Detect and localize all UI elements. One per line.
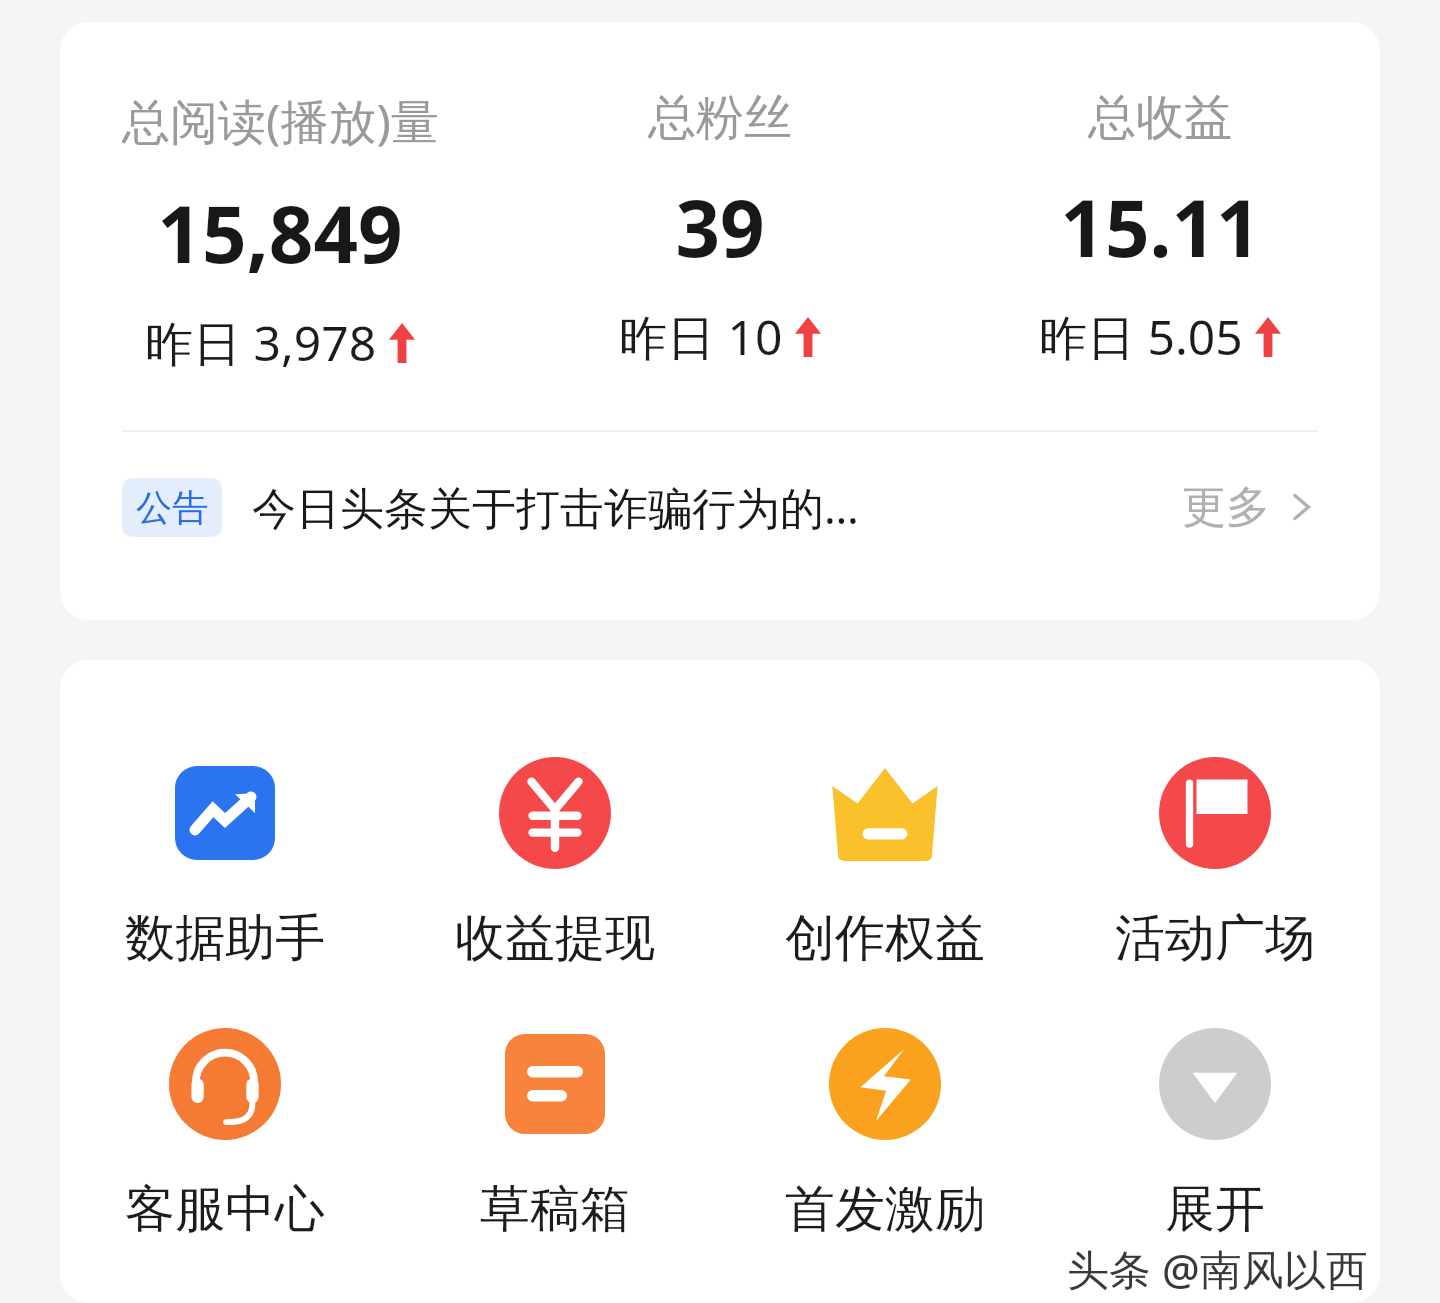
- button[interactable]: 收益提现: [390, 755, 720, 970]
- staticText: 15,849: [157, 180, 403, 286]
- other: 数据助手: [175, 766, 275, 860]
- staticText: 更多: [1182, 480, 1270, 535]
- staticText: 头条 @南风以西: [1067, 1240, 1368, 1297]
- button[interactable]: 数据助手: [60, 755, 390, 970]
- other: 活动广场: [1159, 757, 1271, 869]
- staticText: 总阅读(播放)量: [122, 88, 439, 154]
- staticText: 收益提现: [455, 907, 655, 970]
- other: 首发激励: [829, 1028, 941, 1140]
- button[interactable]: 展开: [1050, 1026, 1380, 1241]
- button[interactable]: 活动广场: [1050, 755, 1380, 970]
- staticText: 昨日 5.05: [1039, 304, 1243, 370]
- staticText: 数据助手: [125, 907, 325, 970]
- button[interactable]: 公告: [60, 432, 1380, 582]
- staticText: 公告: [136, 485, 208, 530]
- staticText: 草稿箱: [480, 1178, 630, 1241]
- button[interactable]: 客服中心: [60, 1026, 390, 1241]
- staticText: 总粉丝: [648, 88, 792, 148]
- staticText: 昨日 10: [619, 304, 783, 370]
- button[interactable]: 总粉丝: [500, 88, 940, 370]
- staticText: 39: [675, 174, 765, 280]
- button[interactable]: 草稿箱: [390, 1026, 720, 1241]
- staticText: 15.11: [1060, 174, 1261, 280]
- button[interactable]: 首发激励: [720, 1026, 1050, 1241]
- other: 客服中心: [169, 1028, 281, 1140]
- staticText: 昨日 3,978: [145, 310, 377, 376]
- other: 收益提现: [499, 757, 611, 869]
- staticText: 首发激励: [785, 1178, 985, 1241]
- staticText: 今日头条关于打击诈骗行为的…: [252, 477, 859, 537]
- staticText: 展开: [1165, 1178, 1265, 1241]
- other: 创作权益: [829, 765, 941, 861]
- staticText: 总收益: [1088, 88, 1232, 148]
- other: 展开: [1159, 1028, 1271, 1140]
- staticText: 活动广场: [1115, 907, 1315, 970]
- staticText: 客服中心: [125, 1178, 325, 1241]
- staticText: 创作权益: [785, 907, 985, 970]
- other: 草稿箱: [505, 1034, 605, 1134]
- other: 更多: [1284, 490, 1318, 524]
- button[interactable]: 创作权益: [720, 755, 1050, 970]
- button[interactable]: 总收益: [940, 88, 1380, 370]
- button[interactable]: 总阅读(播放)量: [60, 88, 500, 376]
